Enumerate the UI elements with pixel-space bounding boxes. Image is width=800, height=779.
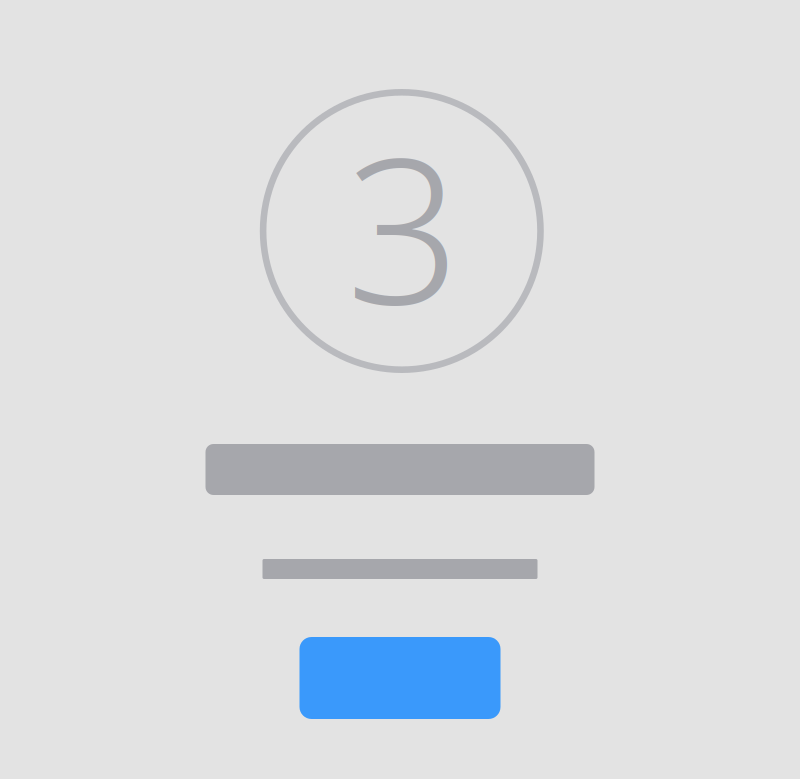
staticText: 3 [346,92,461,360]
button[interactable]: Continue [299,637,500,719]
